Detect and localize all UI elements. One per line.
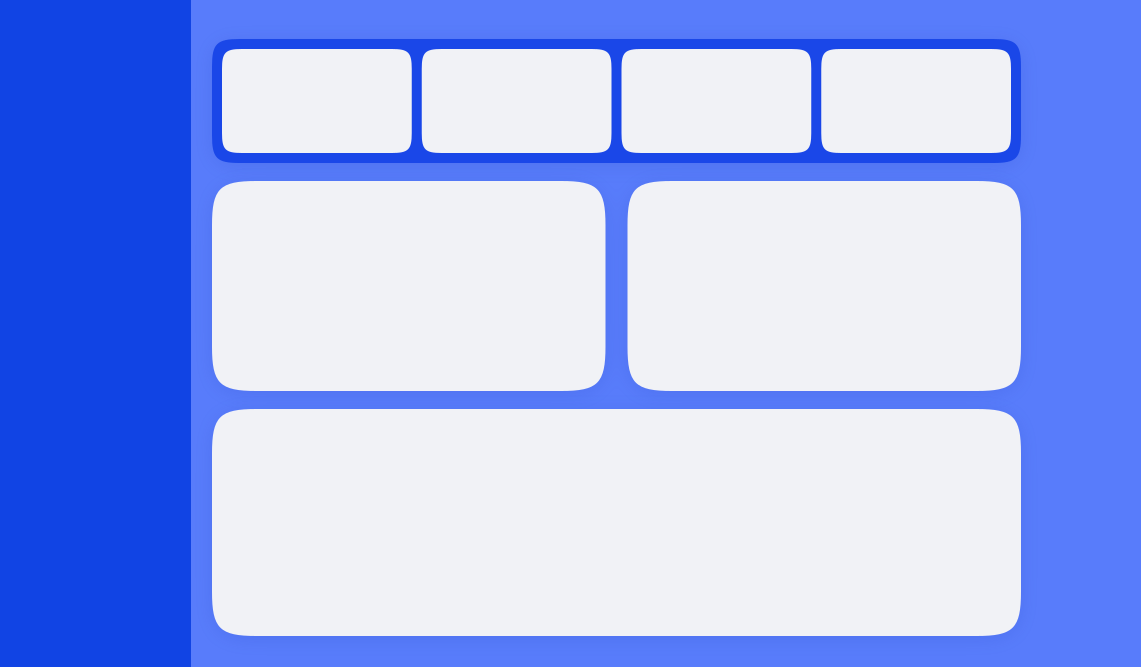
button[interactable]: Loading placeholder (212, 409, 1021, 636)
button[interactable]: Loading placeholder (212, 181, 605, 391)
button[interactable]: Loading placeholder (627, 181, 1021, 391)
button[interactable]: Loading placeholder (821, 49, 1011, 153)
button[interactable]: Loading placeholder (222, 49, 412, 153)
button[interactable]: Loading placeholder (422, 49, 612, 153)
button[interactable]: Loading placeholder (621, 49, 811, 153)
